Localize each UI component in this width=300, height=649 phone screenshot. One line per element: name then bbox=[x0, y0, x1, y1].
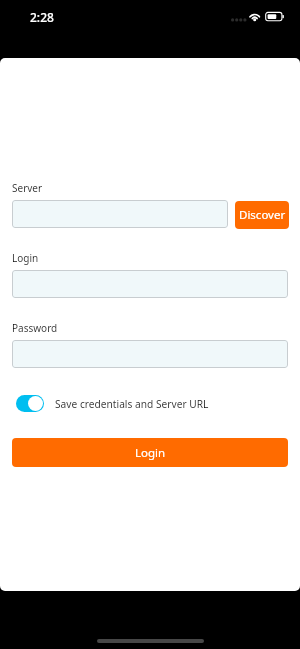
button[interactable]: Save credentials toggle bbox=[16, 395, 209, 412]
staticText: Login bbox=[12, 251, 39, 265]
staticText: 2:28 bbox=[30, 9, 54, 25]
staticText: Login bbox=[135, 445, 166, 461]
staticText: Password bbox=[12, 321, 58, 335]
button[interactable] bbox=[12, 200, 228, 228]
button[interactable] bbox=[12, 270, 288, 298]
other: Save credentials toggle bbox=[16, 395, 44, 412]
button[interactable]: Discover bbox=[235, 201, 289, 229]
button[interactable] bbox=[12, 340, 288, 368]
staticText: Discover bbox=[239, 207, 286, 223]
staticText: Server bbox=[12, 181, 43, 195]
staticText: Save credentials and Server URL bbox=[55, 397, 209, 411]
button[interactable]: Login bbox=[12, 438, 288, 467]
